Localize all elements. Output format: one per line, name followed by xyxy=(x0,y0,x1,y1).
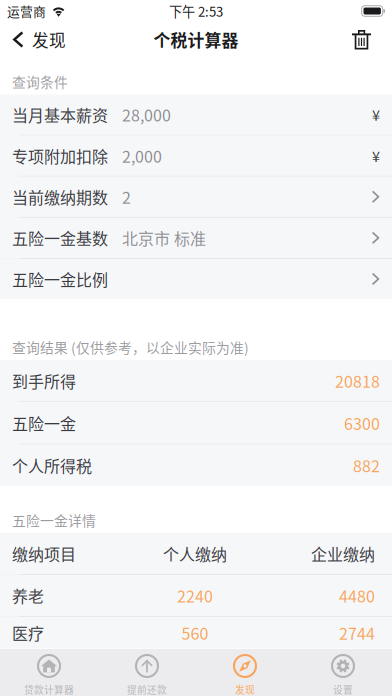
staticText: 2744 xyxy=(339,621,375,644)
staticText: 缴纳项目 xyxy=(12,542,76,565)
staticText: 到手所得 xyxy=(12,369,76,392)
staticText: 882 xyxy=(353,454,380,477)
button[interactable]: 删除 xyxy=(340,22,392,57)
staticText: 28,000 xyxy=(122,103,171,126)
button[interactable]: 当月基本薪资 xyxy=(0,94,392,135)
staticText: 个人所得税 xyxy=(12,454,92,477)
staticText: 当月基本薪资 xyxy=(12,103,108,126)
staticText: 个人缴纳 xyxy=(163,542,227,565)
staticText: 企业缴纳 xyxy=(311,542,375,565)
staticText: 2,000 xyxy=(122,144,162,167)
staticText: 560 xyxy=(181,621,208,644)
staticText: 五险一金比例 xyxy=(12,267,108,291)
staticText: 个税计算器 xyxy=(153,27,238,52)
staticText: 设置 xyxy=(333,682,353,696)
staticText: 查询条件 xyxy=(12,71,68,91)
button[interactable]: 设置 xyxy=(294,649,392,696)
staticText: 专项附加扣除 xyxy=(12,144,108,167)
staticText: 运营商 xyxy=(7,2,46,20)
staticText: 北京市 标准 xyxy=(122,226,206,249)
staticText: 当前缴纳期数 xyxy=(12,185,108,208)
staticText: 20818 xyxy=(335,369,380,392)
staticText: 4480 xyxy=(339,584,375,607)
staticText: 下午 2:53 xyxy=(169,1,223,20)
button[interactable]: 发现 xyxy=(0,22,74,57)
button[interactable]: 发现 xyxy=(196,649,294,696)
button[interactable]: 贷款计算器 xyxy=(0,649,98,696)
staticText: 医疗 xyxy=(12,621,44,644)
staticText: 查询结果 (仅供参考，以企业实际为准) xyxy=(12,337,249,357)
button[interactable]: 五险一金基数 xyxy=(0,218,392,258)
staticText: 2 xyxy=(122,185,131,208)
staticText: 发现 xyxy=(32,27,66,51)
staticText: 贷款计算器 xyxy=(24,682,74,696)
staticText: 五险一金基数 xyxy=(12,226,108,249)
button[interactable]: 专项附加扣除 xyxy=(0,136,392,176)
button[interactable]: 当前缴纳期数 xyxy=(0,177,392,217)
staticText: ¥ xyxy=(372,104,380,125)
staticText: 五险一金详情 xyxy=(12,510,96,530)
staticText: 养老 xyxy=(12,584,44,607)
staticText: 2240 xyxy=(177,584,213,607)
button[interactable]: 提前还款 xyxy=(98,649,196,696)
staticText: ¥ xyxy=(372,145,380,166)
staticText: 发现 xyxy=(235,682,255,696)
staticText: 五险一金 xyxy=(12,411,76,435)
staticText: 6300 xyxy=(344,411,380,435)
button[interactable]: 五险一金比例 xyxy=(0,259,392,299)
staticText: 提前还款 xyxy=(127,682,167,696)
